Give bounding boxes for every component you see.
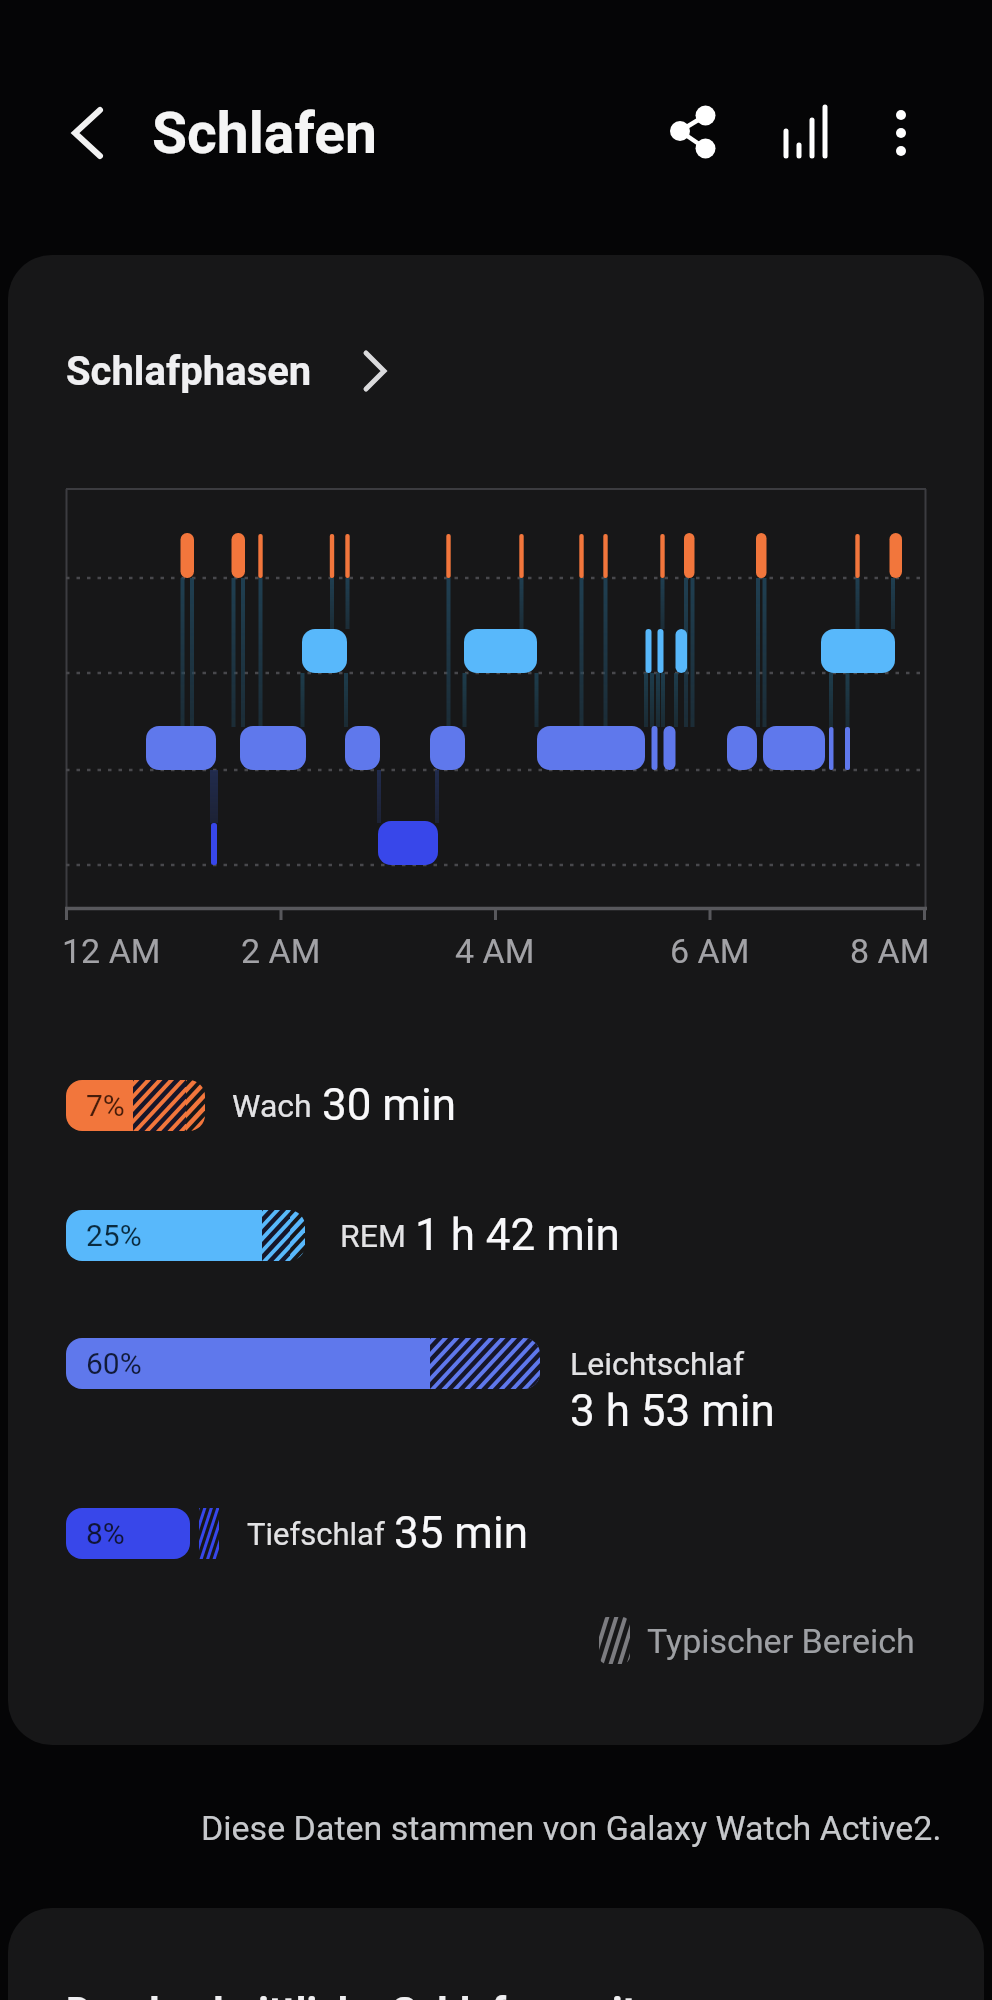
staticText: 30 min	[322, 1079, 456, 1131]
staticText: Diese Daten stammen von Galaxy Watch Act…	[201, 1808, 942, 1848]
staticText: Schlafphasen	[66, 348, 312, 395]
staticText: 6 AM	[670, 931, 750, 971]
button[interactable]	[875, 98, 927, 166]
staticText: Tiefschlaf	[247, 1516, 385, 1552]
button[interactable]	[8, 1908, 984, 2000]
button[interactable]	[772, 98, 836, 162]
staticText: 25%	[86, 1218, 142, 1253]
button[interactable]	[58, 338, 408, 404]
staticText: 35 min	[394, 1507, 528, 1559]
staticText: Durchschnittliche Schlafenszeiten	[66, 1989, 681, 2000]
staticText: Leichtschlaf	[570, 1345, 745, 1383]
staticText: 7%	[86, 1088, 125, 1123]
staticText: 1 h 42 min	[415, 1209, 620, 1261]
button[interactable]	[58, 103, 118, 163]
staticText: Wach	[232, 1087, 312, 1125]
staticText: 2 AM	[241, 931, 321, 971]
staticText: 8 AM	[850, 931, 930, 971]
staticText: REM	[340, 1217, 406, 1255]
staticText: 60%	[86, 1346, 142, 1381]
staticText: 4 AM	[455, 931, 535, 971]
staticText: 3 h 53 min	[570, 1385, 775, 1437]
staticText: 8%	[86, 1516, 125, 1551]
staticText: Typischer Bereich	[647, 1621, 915, 1661]
button[interactable]	[661, 98, 729, 166]
staticText: 12 AM	[62, 931, 161, 971]
staticText: Schlafen	[152, 100, 377, 167]
